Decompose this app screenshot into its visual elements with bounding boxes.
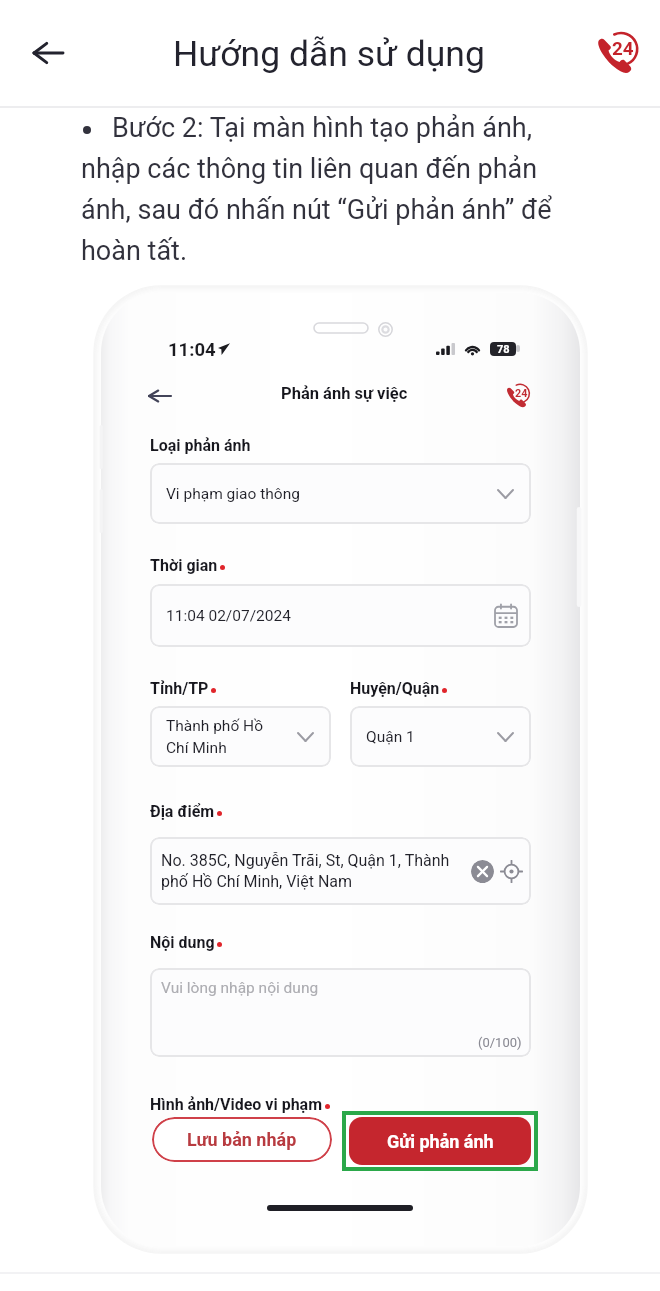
button[interactable]: Vui lòng nhập nội dung xyxy=(150,968,531,1057)
staticText: Địa điểm xyxy=(150,802,215,821)
staticText: 24 xyxy=(515,387,528,400)
button[interactable]: Quận 1 xyxy=(350,706,531,767)
staticText: 24 xyxy=(612,38,634,60)
staticText: Loại phản ánh xyxy=(150,436,251,455)
button[interactable]: Lưu bản nháp xyxy=(152,1117,332,1162)
staticText: 11:04 02/07/2024 xyxy=(166,607,291,625)
staticText: 78 xyxy=(497,343,510,356)
button[interactable]: Clear xyxy=(471,860,494,883)
staticText: Thời gian xyxy=(150,556,218,575)
staticText: Vui lòng nhập nội dung xyxy=(161,979,319,997)
button[interactable]: Hotline 24 xyxy=(497,375,538,416)
button[interactable]: Vi phạm giao thông xyxy=(150,463,531,524)
button[interactable]: Hotline 24 xyxy=(585,21,647,83)
staticText: Hướng dẫn sử dụng xyxy=(173,33,485,75)
staticText: Gửi phản ánh xyxy=(387,1131,494,1152)
staticText: Phản ánh sự việc xyxy=(281,384,408,403)
staticText: hoàn tất. xyxy=(81,235,188,267)
button[interactable]: No. 385C, Nguyễn Trãi, St, Quận 1, Thành… xyxy=(150,837,531,905)
staticText: Vi phạm giao thông xyxy=(166,485,300,503)
staticText: 11:04 xyxy=(168,339,216,361)
staticText: (0/100) xyxy=(478,1035,522,1050)
button[interactable]: Back xyxy=(17,22,79,84)
staticText: Quận 1 xyxy=(366,728,415,746)
staticText: Thành phố Hồ Chí Minh xyxy=(166,717,263,757)
staticText: ánh, sau đó nhấn nút “Gửi phản ánh” để xyxy=(81,194,552,226)
staticText: Lưu bản nháp xyxy=(187,1129,297,1150)
staticText: nhập các thông tin liên quan đến phản xyxy=(81,153,538,185)
button[interactable]: Gửi phản ánh xyxy=(349,1117,531,1165)
staticText: No. 385C, Nguyễn Trãi, St, Quận 1, Thành… xyxy=(161,851,450,891)
button[interactable]: Thành phố Hồ Chí Minh xyxy=(150,706,331,767)
staticText: Nội dung xyxy=(150,933,215,952)
staticText: Tỉnh/TP xyxy=(150,679,209,698)
staticText: Huyện/Quận xyxy=(350,679,440,698)
staticText: Hình ảnh/Video vi phạm xyxy=(150,1095,323,1114)
button[interactable]: My location xyxy=(500,860,523,883)
staticText: Bước 2: Tại màn hình tạo phản ánh, xyxy=(112,112,532,144)
button[interactable]: Back xyxy=(139,375,180,416)
button[interactable]: 11:04 02/07/2024 xyxy=(150,584,531,647)
